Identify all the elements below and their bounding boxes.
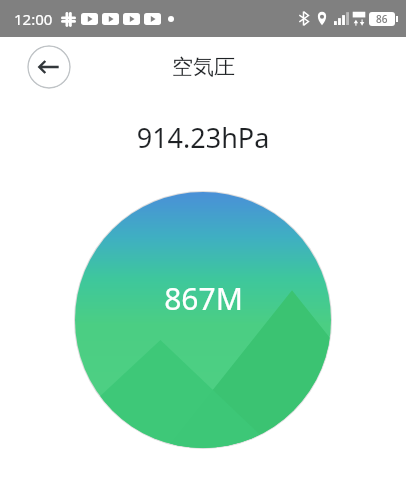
button[interactable]: Back [27, 45, 71, 89]
staticText: 空気圧 [172, 54, 235, 80]
staticText: 867M [164, 278, 243, 319]
staticText: 914.23hPa [0, 119, 406, 156]
staticText: 86 [376, 12, 388, 26]
staticText: 12:00 [14, 9, 53, 29]
